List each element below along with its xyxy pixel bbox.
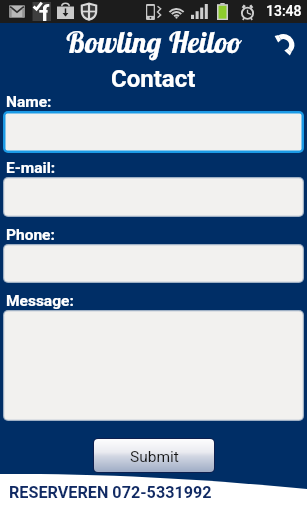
button[interactable] (3, 244, 304, 283)
staticText: Message: (6, 292, 74, 310)
button[interactable] (3, 111, 304, 153)
staticText: Bowling Heiloo (65, 24, 242, 60)
staticText: 13:48 (266, 3, 302, 19)
staticText: Contact (111, 65, 196, 93)
staticText: RESERVEREN 072-5331992 (9, 483, 212, 502)
staticText: E-mail: (6, 159, 56, 177)
button[interactable]: Call (271, 26, 303, 58)
button[interactable]: Submit (93, 438, 215, 473)
staticText: Phone: (6, 226, 55, 244)
button[interactable] (3, 177, 304, 217)
staticText: Submit (130, 448, 179, 466)
button[interactable] (3, 310, 304, 421)
staticText: Name: (6, 93, 52, 111)
